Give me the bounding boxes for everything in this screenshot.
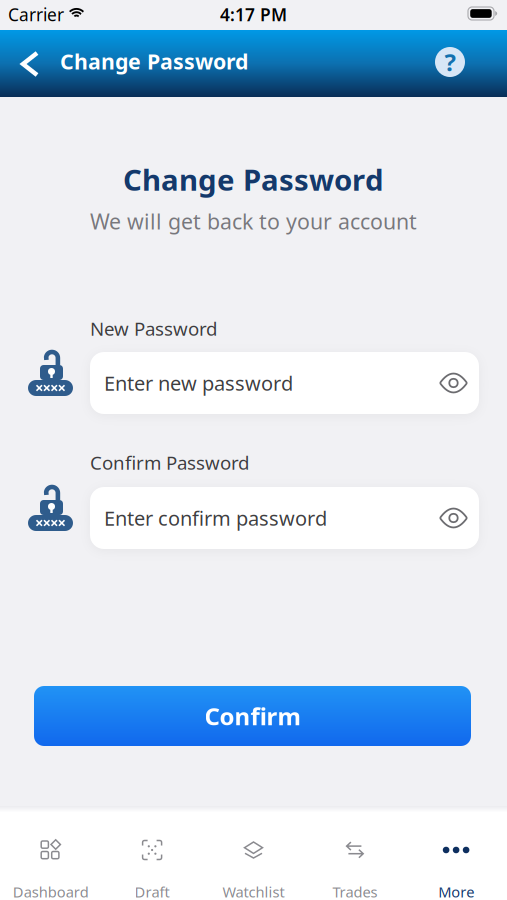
staticText: Carrier xyxy=(8,3,64,26)
staticText: Enter confirm password xyxy=(104,505,327,531)
staticText: Change Password xyxy=(123,160,384,199)
button[interactable]: Show password xyxy=(430,364,477,402)
button[interactable]: Show password xyxy=(430,499,477,537)
staticText: More xyxy=(438,882,474,900)
button[interactable]: More xyxy=(406,812,507,900)
staticText: Draft xyxy=(135,882,170,900)
staticText: Confirm Password xyxy=(90,450,249,475)
staticText: 4:17 PM xyxy=(220,3,287,26)
button[interactable]: Confirm xyxy=(34,686,471,746)
button[interactable]: Watchlist xyxy=(203,812,304,900)
button[interactable]: Draft xyxy=(101,812,203,900)
staticText: Trades xyxy=(332,882,377,900)
staticText: Confirm xyxy=(204,700,300,732)
button[interactable]: Trades xyxy=(304,812,406,900)
staticText: We will get back to your account xyxy=(90,207,417,235)
button[interactable]: Help xyxy=(435,47,465,77)
button[interactable]: Dashboard xyxy=(0,812,101,900)
staticText: Change Password xyxy=(60,47,248,75)
staticText: New Password xyxy=(90,316,217,341)
staticText: ? xyxy=(444,46,455,78)
staticText: Dashboard xyxy=(13,882,89,900)
staticText: Enter new password xyxy=(104,370,293,396)
button[interactable]: Back xyxy=(15,43,45,85)
staticText: Watchlist xyxy=(222,882,284,900)
